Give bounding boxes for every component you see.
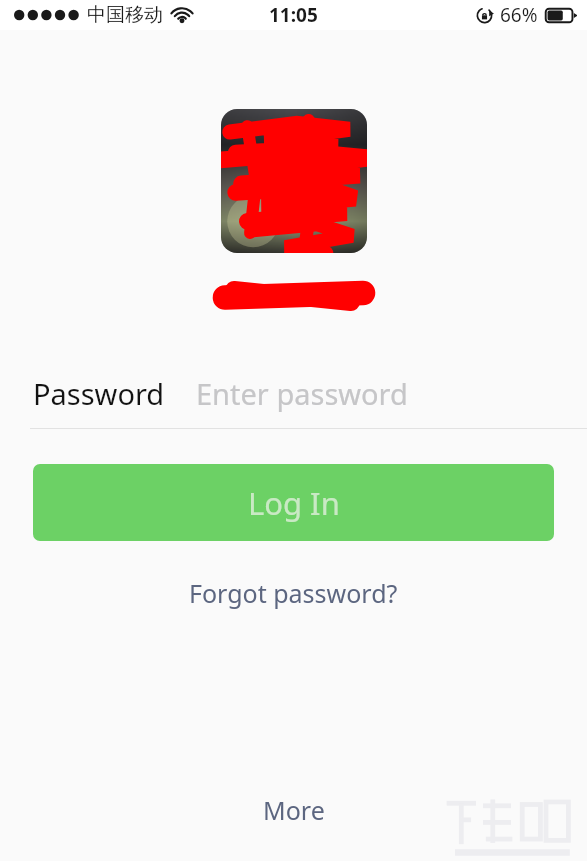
staticText: 66% [500, 2, 538, 28]
staticText: Enter password [196, 374, 408, 413]
staticText: Log In [248, 482, 340, 524]
button[interactable]: Forgot password? [175, 571, 412, 615]
button[interactable]: Profile photo [221, 109, 367, 253]
staticText: 11:05 [269, 2, 318, 28]
staticText: 中国移动 [87, 3, 163, 27]
staticText: More [263, 793, 325, 827]
button[interactable]: Log In [33, 464, 554, 541]
staticText: Forgot password? [189, 576, 398, 610]
staticText: Password [33, 374, 165, 413]
button[interactable]: More [245, 787, 343, 833]
button[interactable]: Password [0, 366, 587, 420]
